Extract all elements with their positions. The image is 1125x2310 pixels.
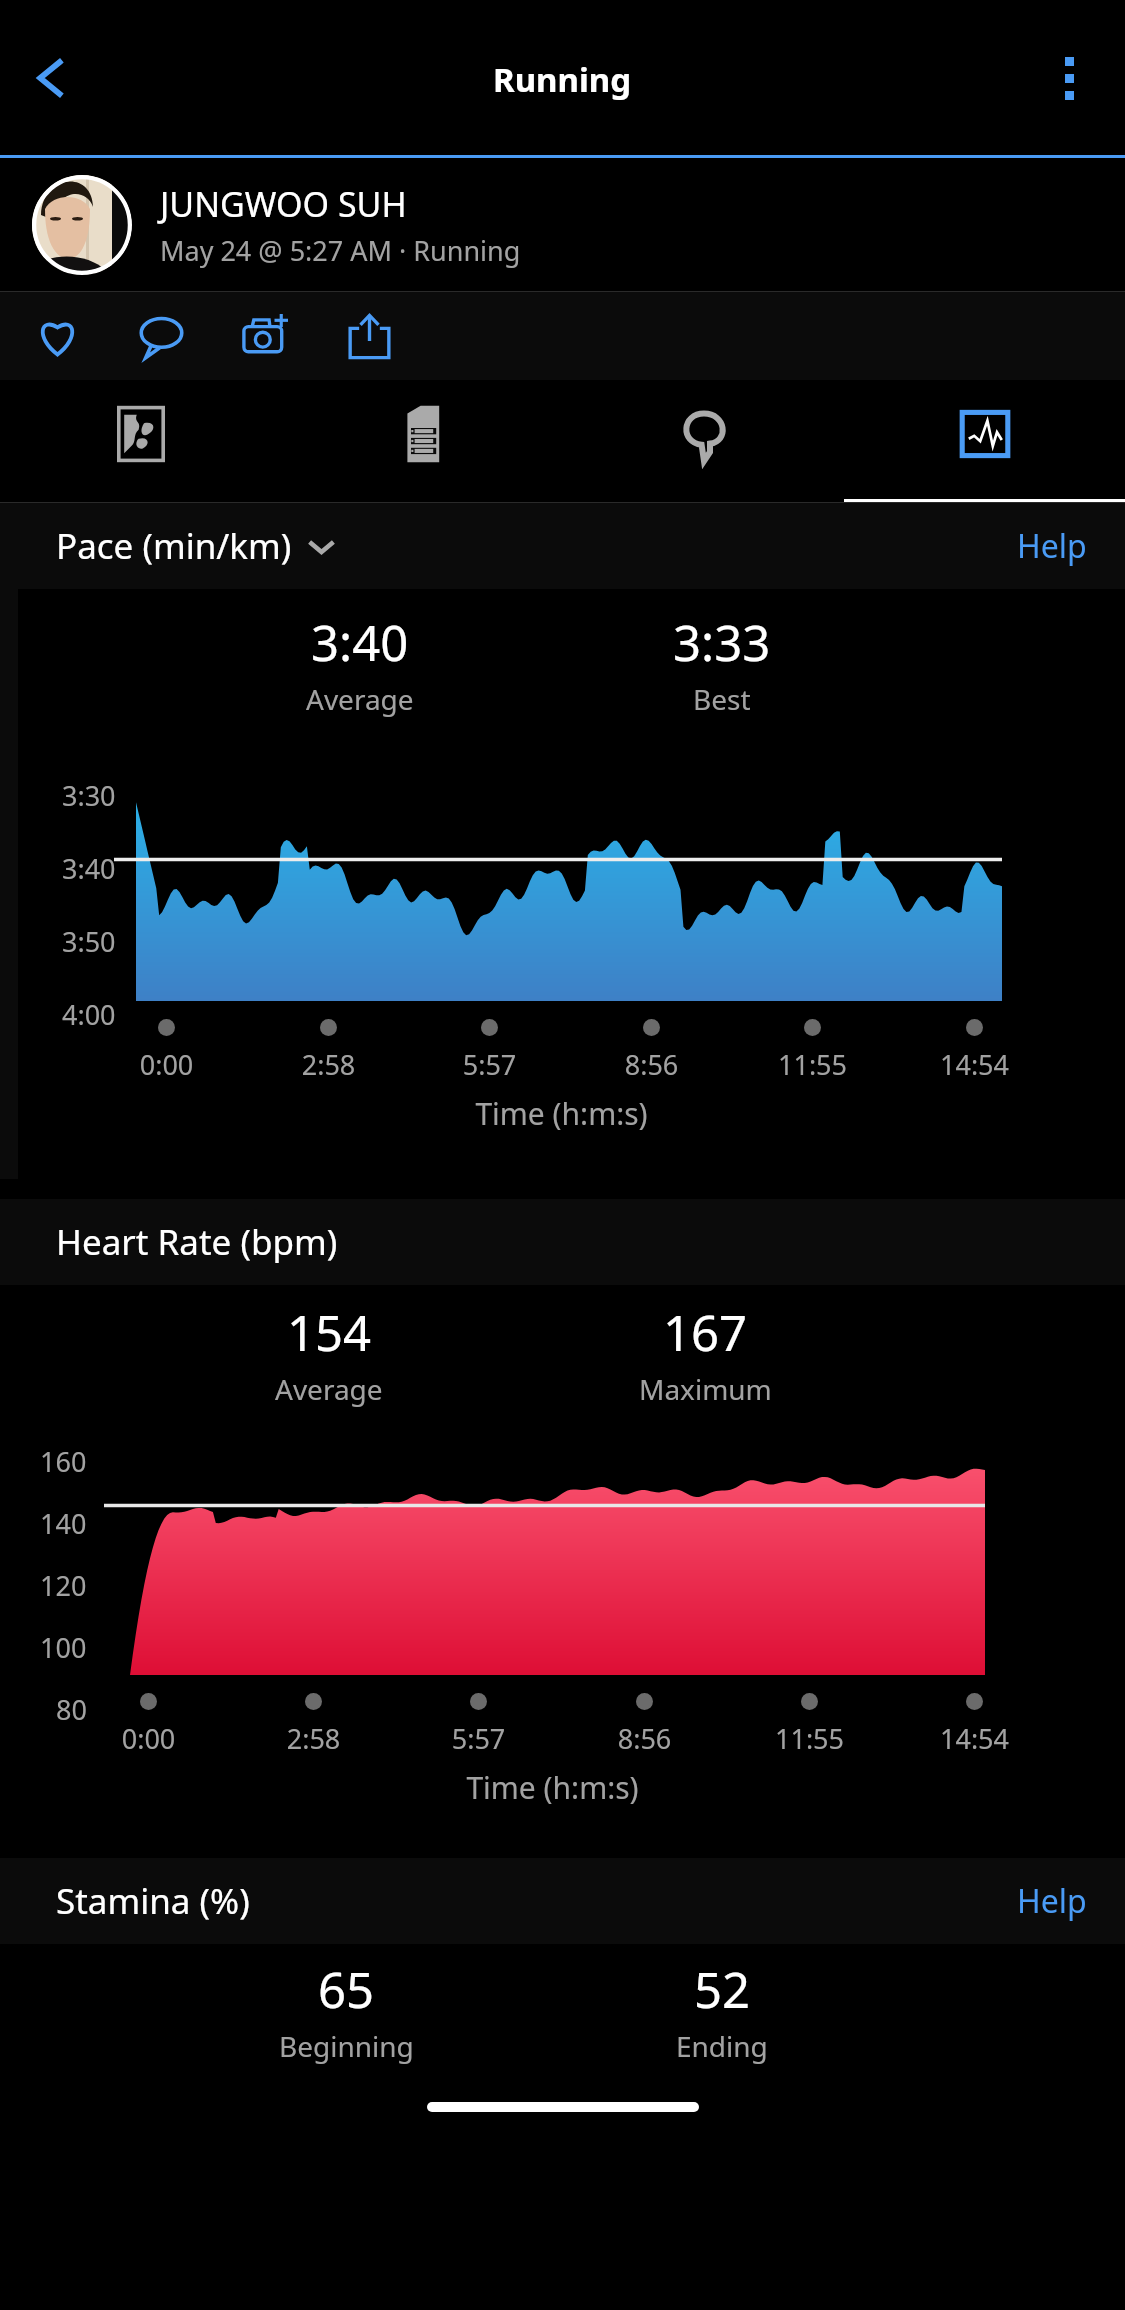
staticText: 140: [40, 1505, 87, 1542]
button[interactable]: Charts: [844, 380, 1125, 503]
staticText: 8:56: [609, 1046, 694, 1083]
staticText: JUNGWOO SUH: [160, 181, 407, 227]
staticText: Running: [493, 57, 632, 102]
staticText: Best: [693, 680, 751, 718]
staticText: 14:54: [932, 1720, 1017, 1757]
staticText: 100: [40, 1629, 87, 1666]
staticText: 167: [663, 1299, 748, 1366]
staticText: 3:40: [311, 609, 409, 676]
staticText: 65: [318, 1956, 375, 2023]
staticText: Time (h:m:s): [0, 1767, 1115, 1808]
staticText: 5:57: [447, 1046, 532, 1083]
button[interactable]: Laps: [563, 380, 844, 503]
staticText: 154: [287, 1299, 372, 1366]
staticText: 120: [40, 1567, 87, 1604]
staticText: 3:40: [62, 850, 116, 887]
button[interactable]: Like: [26, 305, 88, 367]
staticText: Average: [306, 680, 414, 718]
staticText: Maximum: [639, 1370, 772, 1408]
staticText: Average: [275, 1370, 383, 1408]
button[interactable]: Comment: [130, 305, 192, 367]
staticText: Help: [1017, 1879, 1087, 1923]
button[interactable]: Back: [16, 43, 86, 113]
staticText: 5:57: [436, 1720, 521, 1757]
button[interactable]: Add photo: [234, 305, 296, 367]
staticText: 14:54: [932, 1046, 1017, 1083]
button[interactable]: Pace (min/km): [56, 522, 335, 570]
staticText: Pace (min/km): [56, 522, 292, 570]
staticText: 3:50: [62, 923, 116, 960]
staticText: 2:58: [271, 1720, 356, 1757]
staticText: 11:55: [770, 1046, 855, 1083]
button[interactable]: More options: [1037, 46, 1101, 110]
staticText: Time (h:m:s): [8, 1093, 1115, 1134]
staticText: 8:56: [602, 1720, 687, 1757]
staticText: Heart Rate (bpm): [56, 1218, 338, 1266]
staticText: 3:33: [673, 609, 771, 676]
staticText: 0:00: [124, 1046, 209, 1083]
button[interactable]: Help: [1017, 524, 1087, 568]
staticText: 80: [56, 1691, 87, 1728]
button[interactable]: Map: [0, 380, 282, 503]
button[interactable]: Help: [1017, 1879, 1087, 1923]
staticText: 52: [694, 1956, 751, 2023]
staticText: 3:30: [62, 777, 116, 814]
staticText: Ending: [676, 2027, 768, 2065]
staticText: Stamina (%): [56, 1877, 250, 1925]
button[interactable]: Share: [338, 305, 400, 367]
staticText: 2:58: [286, 1046, 371, 1083]
staticText: 11:55: [767, 1720, 852, 1757]
button[interactable]: Details: [282, 380, 563, 503]
staticText: 0:00: [106, 1720, 191, 1757]
staticText: Help: [1017, 524, 1087, 568]
button[interactable]: JUNGWOO SUH: [0, 158, 1125, 291]
staticText: 160: [40, 1443, 87, 1480]
staticText: May 24 @ 5:27 AM · Running: [160, 232, 521, 269]
staticText: 4:00: [62, 996, 116, 1033]
staticText: Beginning: [279, 2027, 414, 2065]
